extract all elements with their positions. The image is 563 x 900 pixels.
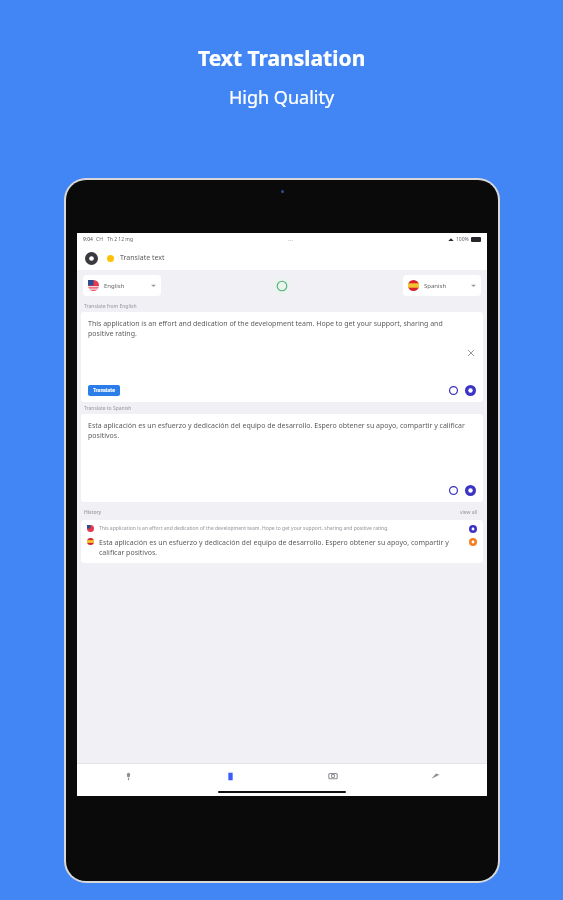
staticText: This application is an effort and dedica… [99, 525, 464, 532]
staticText: Esta aplicación es un esfuerzo y dedicac… [88, 421, 473, 441]
staticText: Translate to Spanish [84, 405, 132, 412]
staticText: Translate [93, 387, 115, 394]
button[interactable]: Copy translation [448, 485, 459, 496]
staticText: Esta aplicación es un esfuerzo y dedicac… [99, 538, 464, 558]
staticText: This application is an effort and dedica… [88, 319, 463, 339]
staticText: High Quality [229, 85, 335, 110]
button[interactable]: Share [384, 764, 487, 788]
button[interactable]: view all [458, 507, 480, 518]
staticText: English [104, 282, 125, 290]
button[interactable]: This application is an effort and dedica… [81, 520, 483, 563]
staticText: 9:04 [83, 236, 93, 243]
staticText: Translate text [120, 253, 165, 263]
staticText: ··· [288, 236, 293, 244]
button[interactable]: Copy [448, 385, 459, 396]
button[interactable]: Translate [88, 385, 120, 396]
staticText: History [84, 509, 102, 516]
button[interactable]: Voice input [77, 764, 179, 788]
button[interactable]: Clear text [466, 348, 476, 358]
button[interactable]: Camera translation [281, 764, 384, 788]
staticText: Text Translation [198, 44, 366, 73]
staticText: Th 2 12 mg [107, 236, 134, 243]
button[interactable]: English [83, 275, 161, 296]
button[interactable]: Text translation [179, 764, 281, 788]
staticText: 100% [456, 236, 469, 243]
staticText: view all [460, 509, 478, 516]
button[interactable]: Listen translation [465, 485, 476, 496]
staticText: Translate from English [84, 303, 137, 310]
staticText: CH [96, 236, 103, 243]
staticText: Spanish [424, 282, 447, 290]
button[interactable]: Spanish [403, 275, 481, 296]
button[interactable]: Swap languages [274, 278, 290, 294]
button[interactable]: Menu [85, 252, 98, 265]
button[interactable]: Listen [465, 385, 476, 396]
